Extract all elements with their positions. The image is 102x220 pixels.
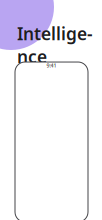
staticText: 9:41 <box>46 62 56 69</box>
staticText: Intelligence <box>17 22 93 68</box>
